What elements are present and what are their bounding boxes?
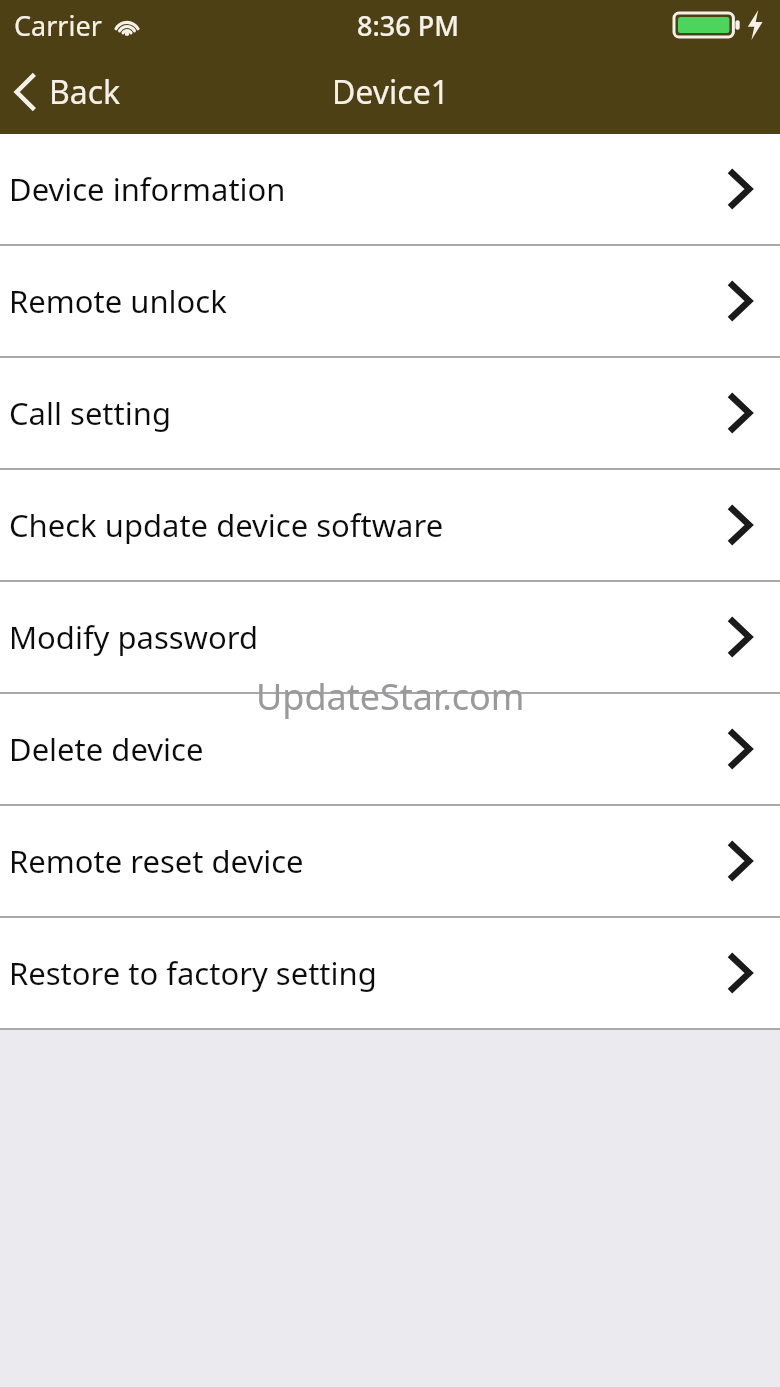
staticText: UpdateStar.com — [256, 672, 525, 721]
button[interactable]: Call setting — [0, 358, 780, 468]
staticText: Back — [49, 70, 121, 114]
button[interactable]: Modify password — [0, 582, 780, 692]
staticText: Carrier — [14, 7, 102, 44]
staticText: Device1 — [332, 70, 449, 114]
button[interactable]: Delete device — [0, 694, 780, 804]
button[interactable]: Restore to factory setting — [0, 918, 780, 1028]
staticText: Check update device software — [9, 504, 444, 546]
button[interactable]: Remote reset device — [0, 806, 780, 916]
staticText: Delete device — [9, 728, 204, 770]
staticText: Remote reset device — [9, 840, 304, 882]
button[interactable]: Check update device software — [0, 470, 780, 580]
staticText: Call setting — [9, 392, 171, 434]
staticText: Device information — [9, 168, 286, 210]
button[interactable]: Remote unlock — [0, 246, 780, 356]
button[interactable]: Back — [0, 62, 135, 122]
staticText: Modify password — [9, 616, 258, 658]
staticText: 8:36 PM — [357, 7, 459, 44]
staticText: Restore to factory setting — [9, 952, 377, 994]
button[interactable]: Device information — [0, 134, 780, 244]
staticText: Remote unlock — [9, 280, 227, 322]
